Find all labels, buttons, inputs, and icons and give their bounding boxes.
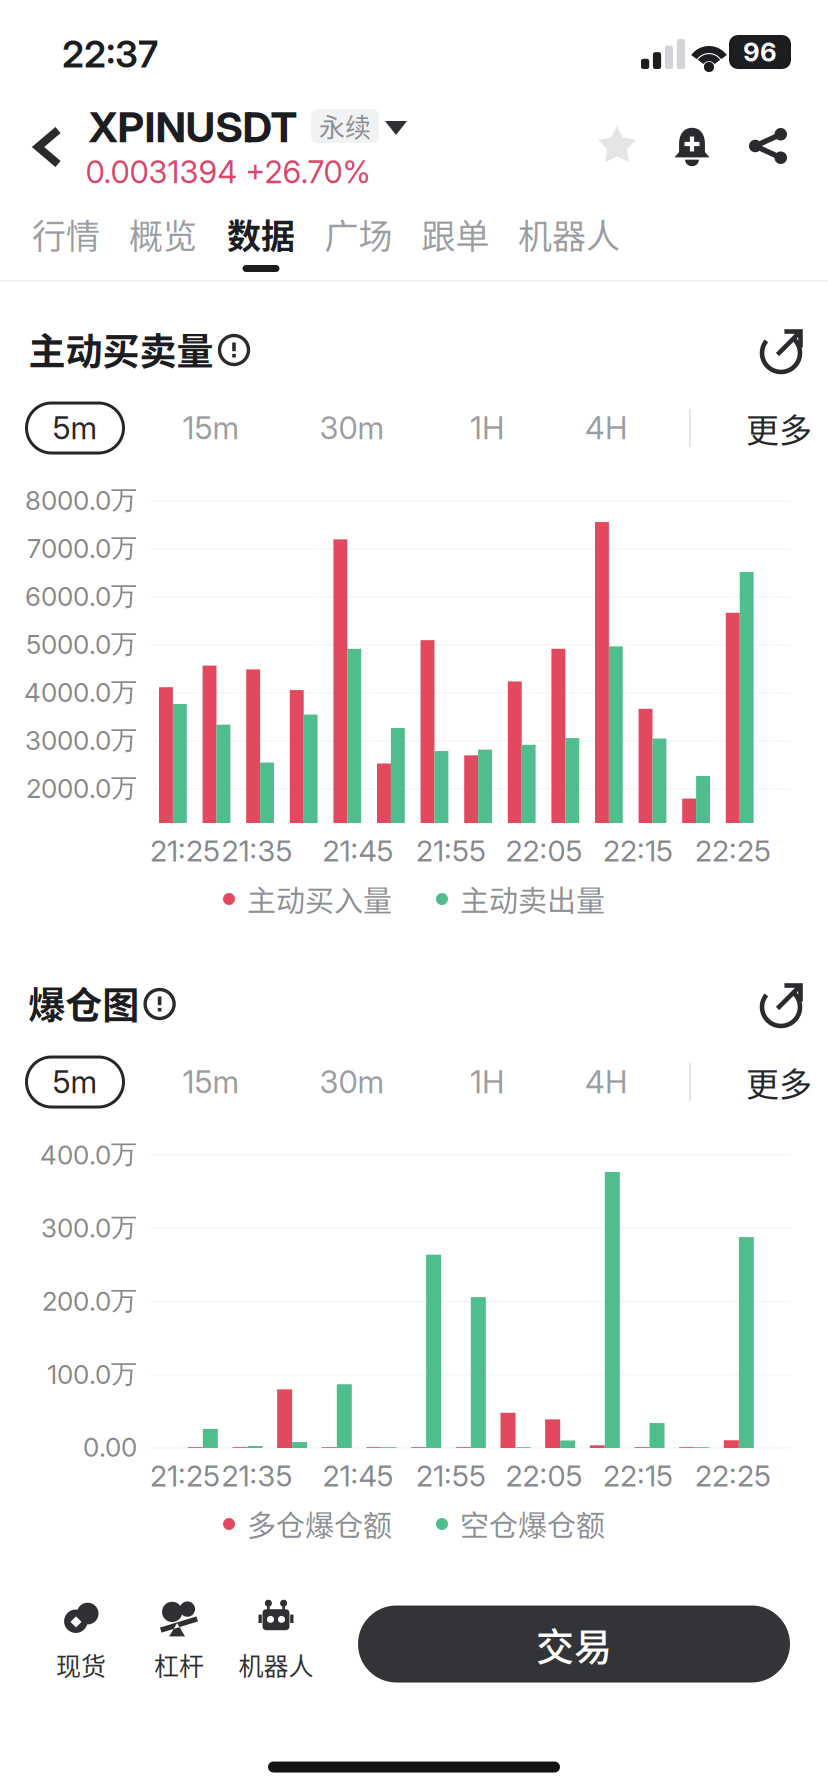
staticText: 5m <box>52 1063 97 1101</box>
button[interactable]: 概览 <box>114 205 212 297</box>
staticText: 现货 <box>56 1646 106 1683</box>
staticText: 21:35 <box>221 833 292 869</box>
staticText: 22:25 <box>695 833 771 869</box>
button[interactable]: 杠杆 <box>129 1600 229 1684</box>
staticText: 4H <box>585 409 627 447</box>
staticText: 空仓爆仓额 <box>460 1503 605 1545</box>
button[interactable]: 全屏查看 <box>743 963 821 1041</box>
staticText: 广场 <box>324 209 392 259</box>
staticText: 8000.0万 <box>25 484 137 516</box>
staticText: 21:45 <box>322 833 393 869</box>
button[interactable]: 1H <box>435 395 539 461</box>
button[interactable]: 全屏查看 <box>743 309 821 387</box>
button[interactable]: 更多 <box>746 1049 828 1115</box>
staticText: 22:25 <box>695 1458 771 1494</box>
button[interactable]: 现货 <box>31 1600 131 1684</box>
staticText: 交易 <box>536 1616 612 1671</box>
button[interactable]: 4H <box>554 1049 658 1115</box>
staticText: 30m <box>319 409 384 447</box>
staticText: 跟单 <box>421 209 489 259</box>
staticText: 21:45 <box>322 1458 393 1494</box>
staticText: 7000.0万 <box>27 532 137 564</box>
staticText: 机器人 <box>238 1646 313 1683</box>
staticText: 3000.0万 <box>25 724 137 756</box>
button[interactable]: 永续 <box>311 109 379 143</box>
staticText: 15m <box>182 1063 239 1101</box>
button[interactable]: 1H <box>435 1049 539 1115</box>
staticText: 5m <box>52 409 97 447</box>
staticText: 4H <box>585 1063 627 1101</box>
staticText: 更多 <box>746 404 812 452</box>
button[interactable]: 交易 <box>358 1605 790 1682</box>
staticText: 爆仓图 <box>28 976 139 1030</box>
staticText: 30m <box>319 1063 384 1101</box>
staticText: 5000.0万 <box>26 628 137 660</box>
staticText: 15m <box>182 409 239 447</box>
button[interactable]: 4H <box>554 395 658 461</box>
staticText: 多仓爆仓额 <box>247 1503 392 1545</box>
staticText: 21:25 <box>150 833 220 869</box>
button[interactable]: 15m <box>159 395 263 461</box>
staticText: 主动卖出量 <box>460 878 605 920</box>
staticText: 22:05 <box>505 833 582 869</box>
button[interactable]: 15m <box>159 1049 263 1115</box>
staticText: 22:37 <box>62 32 158 76</box>
button[interactable]: 行情 <box>18 205 114 297</box>
staticText: 2000.0万 <box>26 772 137 804</box>
staticText: 1H <box>470 409 504 447</box>
staticText: 96 <box>743 36 777 68</box>
button[interactable]: 5m <box>19 395 131 461</box>
staticText: XPINUSDT <box>88 102 297 152</box>
staticText: 6000.0万 <box>25 580 137 612</box>
button[interactable]: 数据 <box>212 205 310 297</box>
staticText: 200.0万 <box>42 1284 137 1317</box>
staticText: 22:15 <box>603 833 673 869</box>
button[interactable]: 机器人 <box>221 1600 331 1684</box>
staticText: 机器人 <box>518 209 620 259</box>
staticText: 21:55 <box>416 833 486 869</box>
staticText: 22:15 <box>603 1458 673 1494</box>
button[interactable]: 30m <box>300 1049 404 1115</box>
button[interactable]: 机器人 <box>504 205 634 297</box>
button[interactable]: 30m <box>300 395 404 461</box>
staticText: 主动买入量 <box>247 878 392 920</box>
staticText: 数据 <box>227 209 295 259</box>
staticText: 21:35 <box>221 1458 292 1494</box>
button[interactable]: 广场 <box>310 205 407 297</box>
staticText: 300.0万 <box>41 1211 137 1244</box>
staticText: 永续 <box>319 107 371 145</box>
staticText: 21:55 <box>416 1458 486 1494</box>
button[interactable]: 收藏 <box>579 108 655 184</box>
staticText: 行情 <box>32 209 100 259</box>
staticText: 21:25 <box>150 1458 220 1494</box>
staticText: 更多 <box>746 1058 812 1106</box>
button[interactable]: 返回 <box>16 115 80 179</box>
button[interactable]: 切换合约 <box>376 108 416 148</box>
staticText: 1H <box>470 1063 504 1101</box>
staticText: 0.0031394 +26.70% <box>85 153 370 191</box>
staticText: 4000.0万 <box>24 676 137 708</box>
staticText: 100.0万 <box>47 1358 137 1390</box>
staticText: 22:05 <box>505 1458 582 1494</box>
button[interactable]: 跟单 <box>407 205 504 297</box>
button[interactable]: 更多 <box>746 395 828 461</box>
button[interactable]: 分享 <box>730 108 806 184</box>
staticText: 400.0万 <box>40 1138 137 1171</box>
staticText: 0.00 <box>83 1431 137 1463</box>
button[interactable]: 5m <box>19 1049 131 1115</box>
button[interactable]: 价格提醒 <box>654 108 730 184</box>
staticText: 概览 <box>129 209 197 259</box>
staticText: 杠杆 <box>154 1646 204 1683</box>
staticText: 主动买卖量 <box>28 322 213 376</box>
